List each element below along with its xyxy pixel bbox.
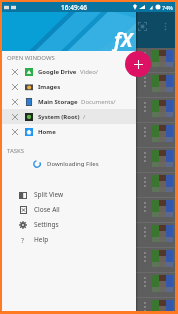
button[interactable]: Google Drive xyxy=(2,64,136,79)
staticText: TASKS xyxy=(7,147,25,155)
button[interactable]: Split View xyxy=(2,187,136,202)
staticText: Video/ xyxy=(80,68,99,76)
staticText: Close All xyxy=(34,205,60,214)
staticText: / xyxy=(83,113,86,121)
button[interactable]: Downloading Files xyxy=(2,157,136,171)
staticText: System (Root) xyxy=(38,113,80,121)
staticText: Help xyxy=(34,235,49,244)
button[interactable]: ? xyxy=(2,232,136,247)
staticText: Google Drive xyxy=(38,68,77,76)
button[interactable]: Home xyxy=(2,124,136,139)
staticText: ? xyxy=(21,236,25,244)
button[interactable]: More options xyxy=(158,19,172,33)
staticText: Main Storage xyxy=(38,98,78,106)
button[interactable]: System (Root) xyxy=(2,109,136,124)
staticText: fX xyxy=(114,27,133,51)
staticText: Split View xyxy=(34,190,64,199)
staticText: 16:49:46 xyxy=(61,3,87,12)
staticText: Home xyxy=(38,128,56,136)
staticText: Downloading Files xyxy=(47,160,99,168)
button[interactable]: Close All xyxy=(2,202,136,217)
staticText: Documents/ xyxy=(81,98,116,106)
button[interactable]: Images xyxy=(2,79,136,94)
button[interactable]: Select xyxy=(134,18,150,34)
staticText: Settings xyxy=(34,220,59,229)
button[interactable]: Settings xyxy=(2,217,136,232)
staticText: 74% xyxy=(162,4,173,11)
button[interactable]: Add xyxy=(125,51,151,77)
staticText: Images xyxy=(38,83,61,91)
staticText: OPEN WINDOWS xyxy=(7,54,55,62)
button[interactable]: Main Storage xyxy=(2,94,136,109)
